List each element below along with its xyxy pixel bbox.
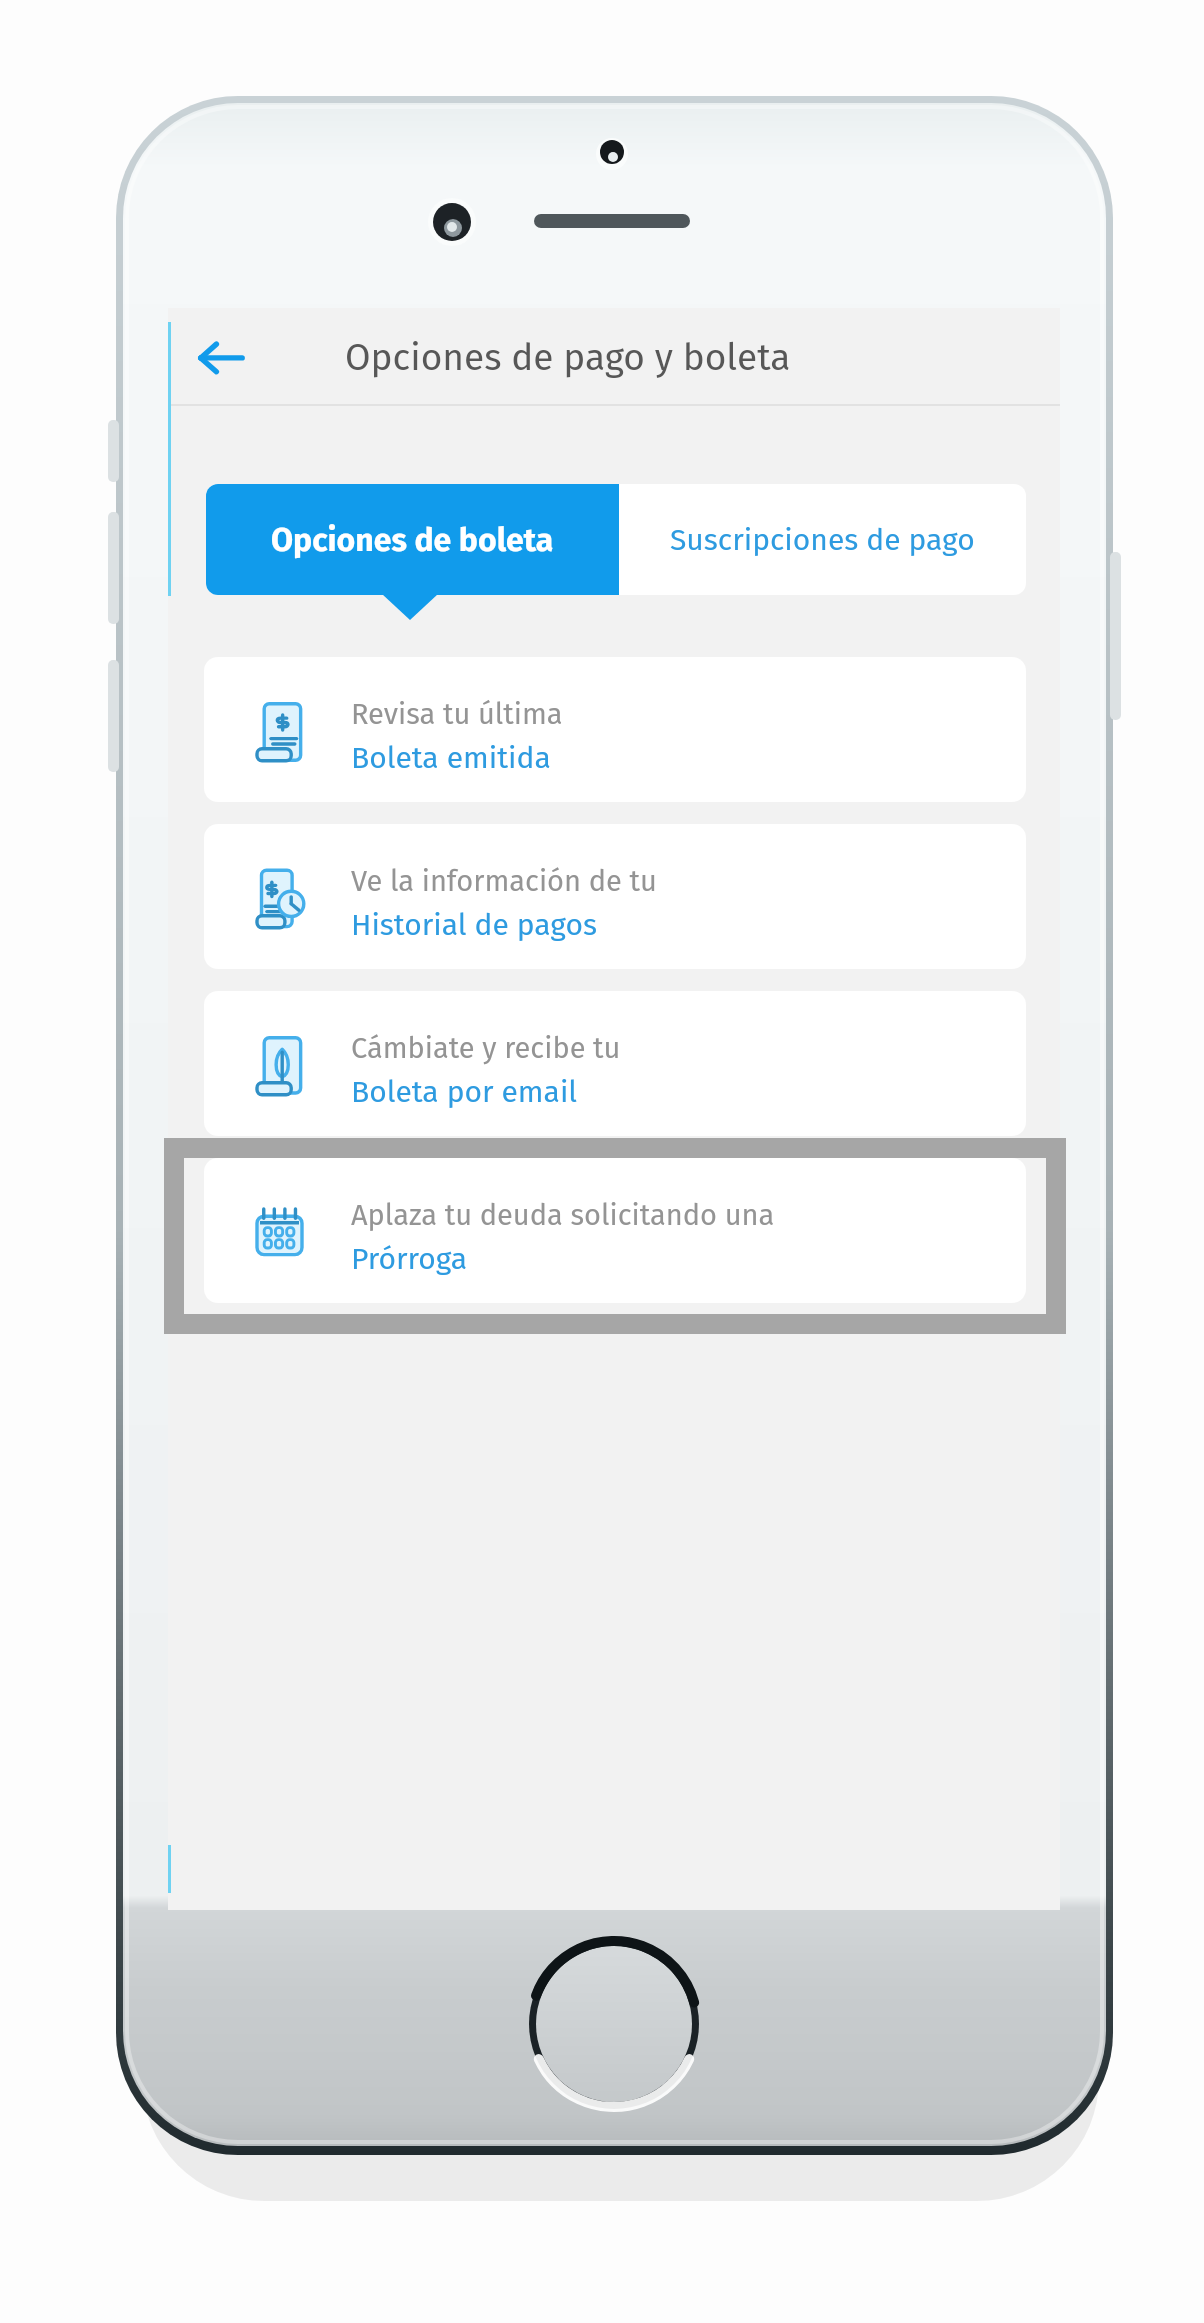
- button[interactable]: Ve la información de tu: [204, 824, 1026, 969]
- staticText: Opciones de boleta: [271, 521, 554, 559]
- button[interactable]: Aplaza tu deuda solicitando una: [204, 1158, 1026, 1303]
- button[interactable]: Revisa tu última: [204, 657, 1026, 802]
- staticText: Ve la información de tu: [351, 864, 657, 899]
- staticText: Boleta por email: [351, 1074, 578, 1110]
- staticText: Suscripciones de pago: [670, 522, 975, 558]
- staticText: Cámbiate y recibe tu: [351, 1031, 621, 1066]
- staticText: Revisa tu última: [351, 697, 563, 732]
- staticText: Boleta emitida: [351, 740, 551, 776]
- button[interactable]: Suscripciones de pago: [619, 484, 1026, 595]
- button[interactable]: Opciones de boleta: [206, 484, 619, 595]
- staticText: Historial de pagos: [351, 907, 597, 943]
- button[interactable]: Cámbiate y recibe tu: [204, 991, 1026, 1136]
- staticText: Opciones de pago y boleta: [345, 335, 791, 379]
- staticText: Prórroga: [351, 1241, 468, 1277]
- button[interactable]: Back: [188, 324, 254, 390]
- staticText: Aplaza tu deuda solicitando una: [351, 1198, 775, 1233]
